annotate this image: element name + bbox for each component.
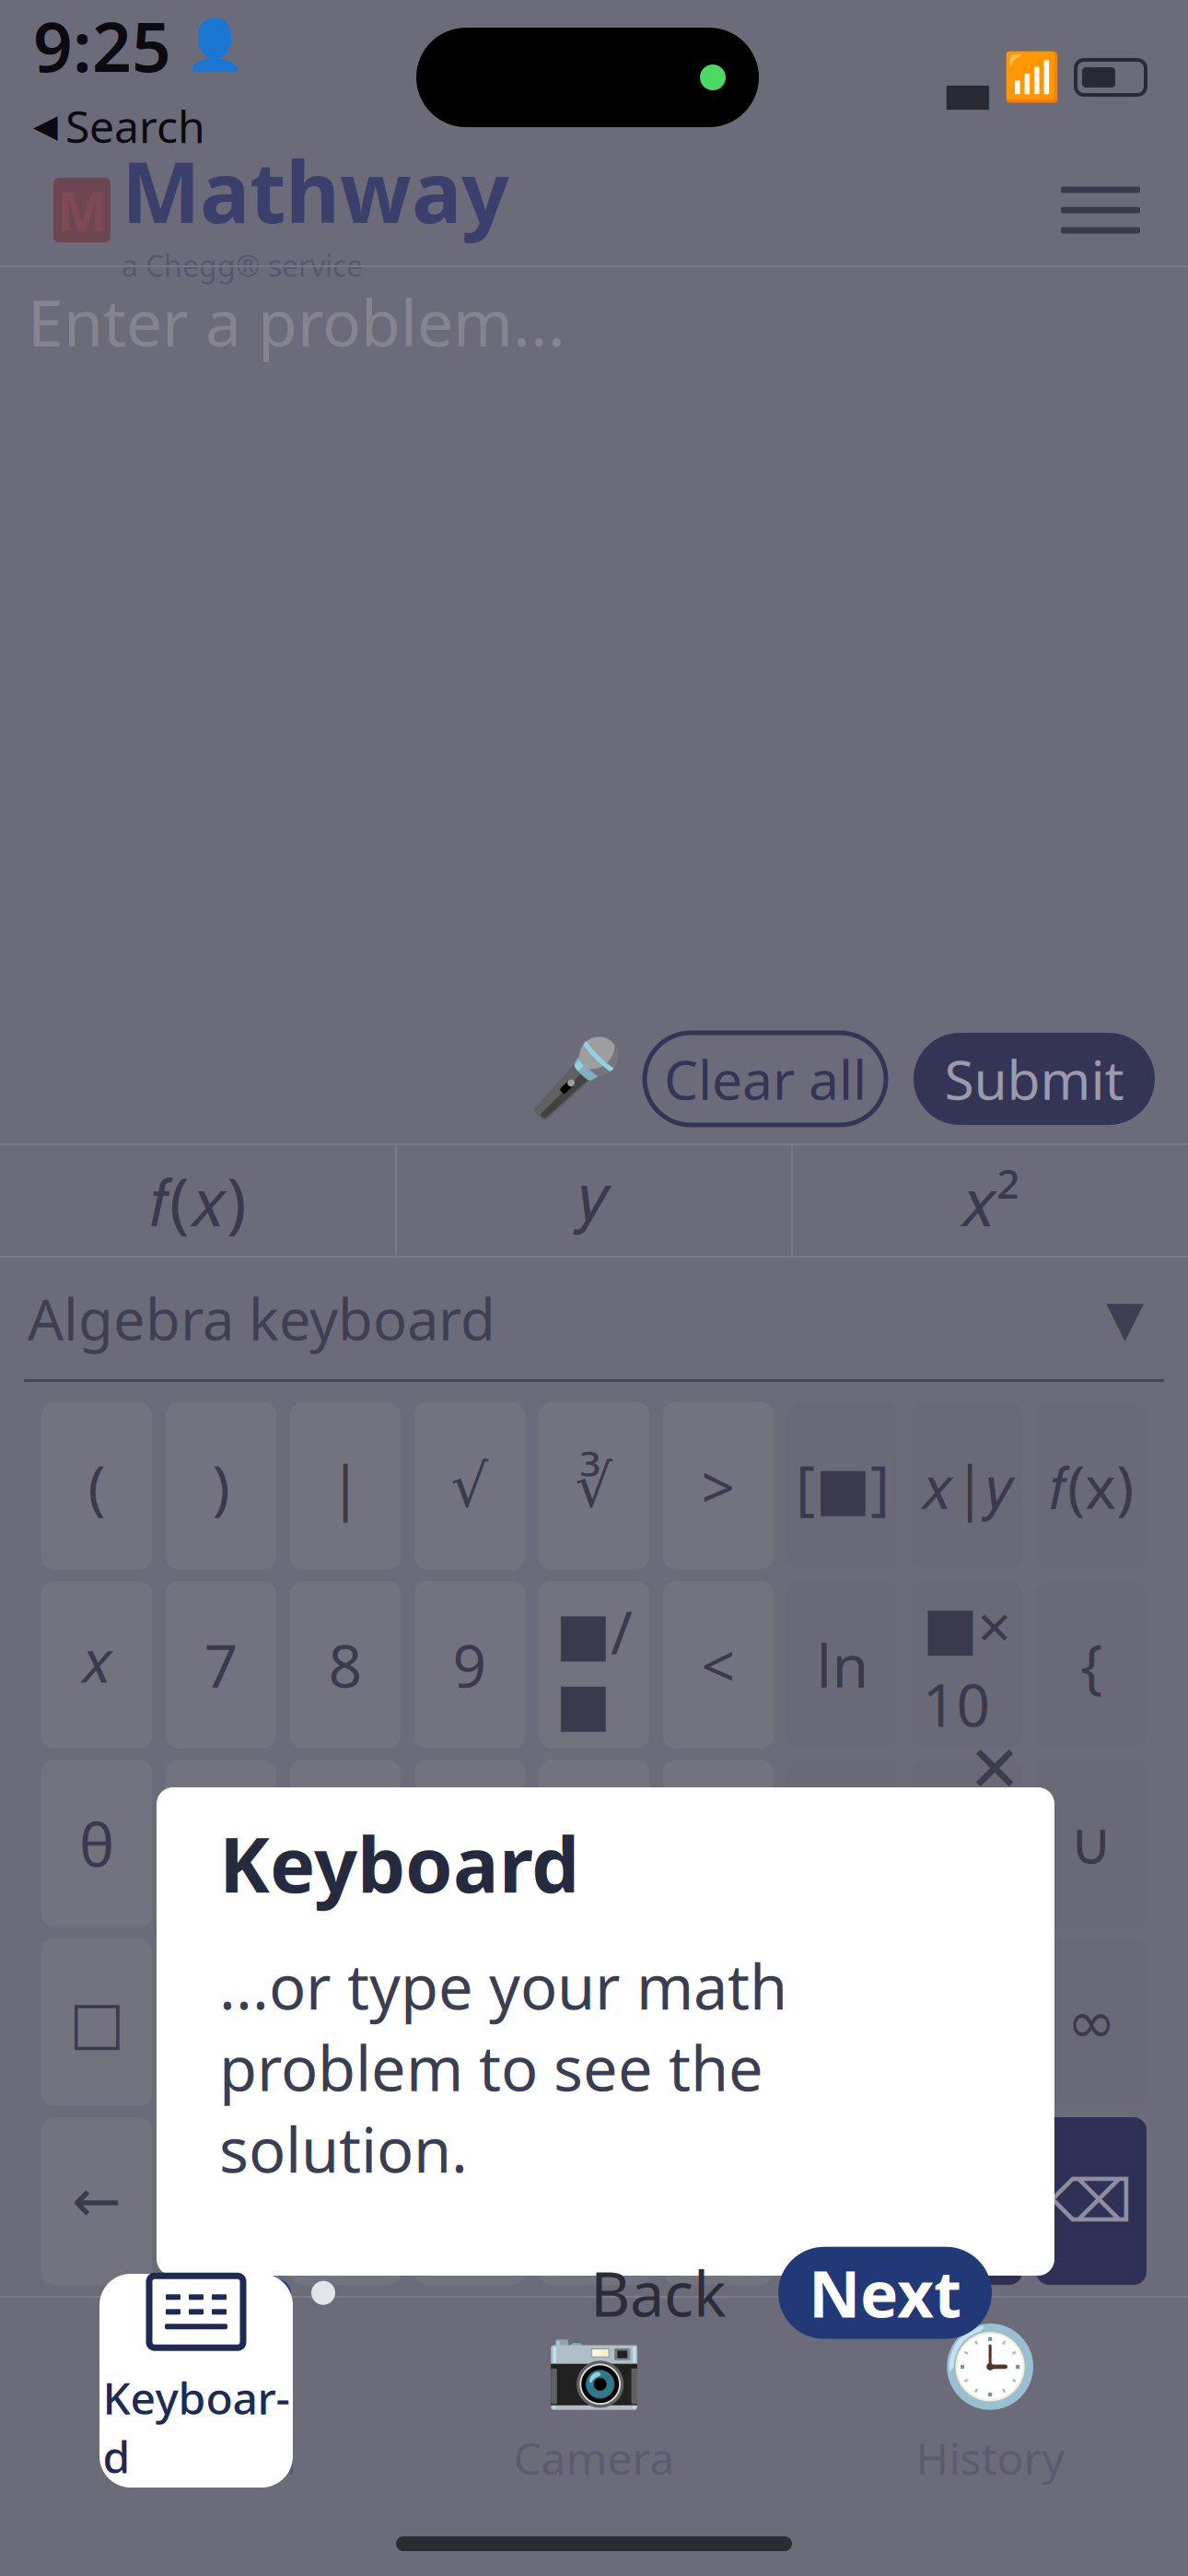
button[interactable]: > <box>912 2117 1022 2285</box>
button[interactable]: □ <box>41 1938 152 2106</box>
staticText: ◀ <box>33 108 58 144</box>
staticText: ...or type your math problem to see the … <box>219 1945 787 2190</box>
staticText: ⌨ <box>141 2322 255 2412</box>
button[interactable]: ∩ <box>912 1760 1022 1927</box>
button[interactable]: − <box>539 1938 649 2106</box>
button[interactable]: ■×10 <box>912 1581 1022 1749</box>
button[interactable]: log <box>787 1760 898 1927</box>
button[interactable]: 📷 <box>396 2308 792 2501</box>
button[interactable]: ln <box>787 1581 898 1749</box>
button[interactable]: ↓ <box>663 2117 774 2285</box>
button[interactable]: ■/■ <box>539 1581 649 1749</box>
button[interactable]: 8 <box>290 1581 401 1749</box>
button[interactable]: { <box>1036 1581 1147 1749</box>
staticText: Keyboard <box>103 2368 290 2486</box>
button[interactable]: ⌫ <box>1036 2117 1147 2285</box>
button[interactable]: Keyboard <box>99 2274 293 2488</box>
button[interactable]: ∛ <box>539 1402 649 1570</box>
button[interactable]: ∞ <box>1036 1938 1147 2106</box>
staticText: θ <box>79 1804 114 1883</box>
staticText: ■×10 <box>922 1587 1012 1743</box>
button[interactable]: < <box>663 1581 774 1749</box>
button[interactable]: Back <box>572 2249 745 2337</box>
button[interactable]: → <box>787 2117 898 2285</box>
button[interactable]: ⌨ <box>0 2308 396 2501</box>
staticText: ) <box>212 1447 230 1525</box>
staticText: ln <box>816 1626 869 1704</box>
staticText: 2 <box>328 1983 362 2061</box>
staticText: ▼ <box>158 2253 227 2354</box>
button[interactable]: Clear all <box>645 1033 886 1125</box>
button[interactable]: ↑ <box>539 2117 649 2285</box>
button[interactable]: ≠ <box>663 1938 774 2106</box>
staticText: ∪ <box>1070 1810 1113 1877</box>
staticText: Mathway <box>122 135 509 246</box>
staticText: 4 <box>204 1804 238 1883</box>
button[interactable]: √ <box>414 1402 525 1570</box>
button[interactable]: 9 <box>414 1581 525 1749</box>
button[interactable]: ◀ <box>33 96 205 155</box>
button[interactable]: 𝑥² <box>793 1146 1187 1255</box>
button[interactable]: 4 <box>166 1760 276 1927</box>
button[interactable]: 𝑦 <box>397 1146 791 1255</box>
staticText: ( <box>88 1447 105 1525</box>
staticText: M <box>57 174 107 246</box>
staticText: Keyboard <box>219 1813 579 1914</box>
button[interactable]: 7 <box>166 1581 276 1749</box>
staticText: √ <box>451 1453 489 1520</box>
staticText: ⌫ <box>1049 2168 1133 2234</box>
button[interactable]: 2 <box>290 1938 401 2106</box>
staticText: 📷 <box>545 2322 643 2412</box>
button[interactable]: Next <box>778 2247 992 2339</box>
button[interactable]: ( <box>41 1402 152 1570</box>
button[interactable]: 𝑥 <box>41 1581 152 1749</box>
staticText: □ <box>69 1989 124 2056</box>
button[interactable]: Close <box>955 1730 1034 1809</box>
button[interactable]: 0 <box>166 2117 276 2285</box>
staticText: . <box>338 2162 353 2240</box>
button[interactable]: 5 <box>290 1760 401 1927</box>
staticText: ∛ <box>575 1453 613 1520</box>
staticText: 𝑓(𝑥) <box>149 1156 247 1245</box>
staticText: Keyboard <box>99 2428 297 2487</box>
button[interactable]: [■] <box>787 1402 898 1570</box>
staticText: ← <box>72 2168 122 2234</box>
button[interactable]: 𝑥|𝑦 <box>912 1402 1022 1570</box>
button[interactable]: 🕒 <box>792 2308 1188 2501</box>
button[interactable]: > <box>663 1402 774 1570</box>
staticText: History <box>916 2428 1064 2487</box>
button[interactable]: ) <box>166 1402 276 1570</box>
button[interactable]: 𝑓(x) <box>1036 1402 1147 1570</box>
button[interactable]: 𝑓(𝑥) <box>1 1146 395 1255</box>
button[interactable]: 6 <box>414 1760 525 1927</box>
button[interactable]: 3 <box>414 1938 525 2106</box>
button[interactable]: × <box>539 1760 649 1927</box>
staticText: 🕒 <box>941 2322 1039 2412</box>
staticText: 𝑓(x) <box>1049 1447 1134 1525</box>
button[interactable]: + <box>414 2117 525 2285</box>
staticText: | <box>329 1447 361 1525</box>
button[interactable]: = <box>663 1760 774 1927</box>
button[interactable]: θ <box>41 1760 152 1927</box>
button[interactable]: Menu <box>1037 163 1164 258</box>
button[interactable]: Change keyboard <box>1089 1274 1160 1363</box>
button[interactable]: 1 <box>166 1938 276 2106</box>
button[interactable]: Submit <box>914 1033 1155 1125</box>
staticText: ≠ <box>693 1989 743 2056</box>
button[interactable]: ∪ <box>1036 1760 1147 1927</box>
button[interactable]: . <box>290 2117 401 2285</box>
staticText: 𝑦 <box>578 1168 610 1233</box>
staticText: 6 <box>453 1804 487 1883</box>
staticText: Submit <box>944 1043 1124 1115</box>
button[interactable]: | <box>290 1402 401 1570</box>
staticText: 3 <box>453 1983 487 2061</box>
button[interactable]: Voice input <box>534 1028 617 1130</box>
button[interactable]: ← <box>41 2117 152 2285</box>
staticText: a Chegg® service <box>122 246 363 285</box>
